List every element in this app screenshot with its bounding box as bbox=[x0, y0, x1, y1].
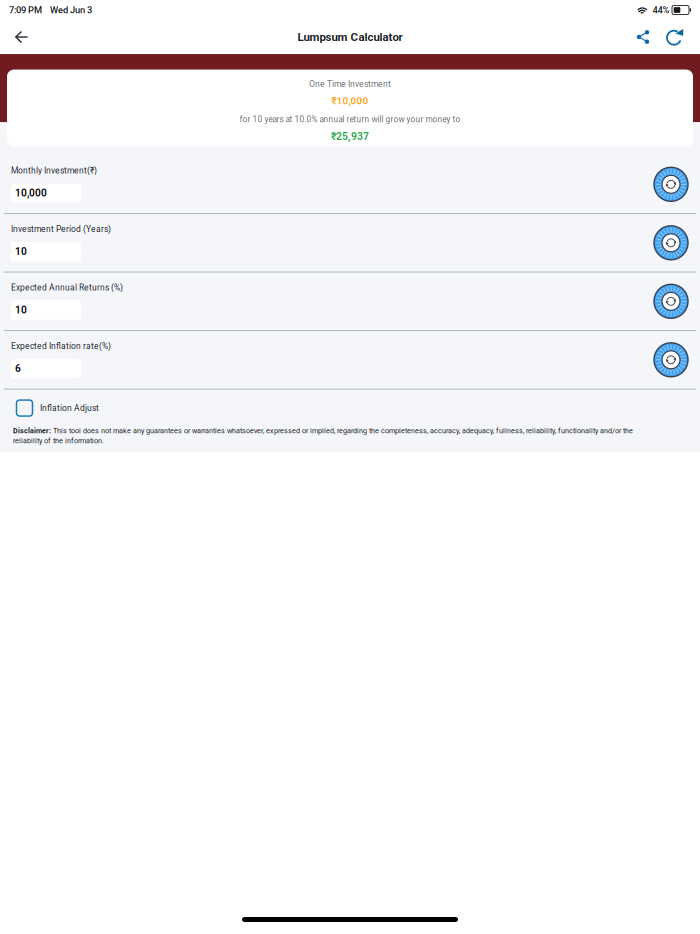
staticText: 10,000 bbox=[15, 187, 47, 199]
button[interactable]: Share bbox=[628, 22, 658, 51]
staticText: One Time Investment bbox=[309, 79, 391, 89]
staticText: Monthly Investment(₹) bbox=[11, 166, 97, 176]
button[interactable]: Back bbox=[7, 23, 36, 50]
staticText: Lumpsum Calculator bbox=[297, 30, 402, 44]
staticText: 44% bbox=[652, 4, 669, 15]
staticText: Expected Annual Returns (%) bbox=[11, 283, 123, 293]
staticText: Wed Jun 3 bbox=[50, 4, 92, 15]
staticText: Disclaimer: bbox=[13, 427, 51, 435]
button[interactable]: Adjust value bbox=[651, 164, 691, 204]
button[interactable]: Adjust value bbox=[651, 340, 691, 380]
staticText: Expected Inflation rate(%) bbox=[11, 341, 111, 351]
staticText: ₹25,937 bbox=[331, 130, 369, 142]
staticText: 10 bbox=[15, 246, 27, 257]
staticText: This tool does not make any guarantees o… bbox=[51, 427, 633, 435]
staticText: Investment Period (Years) bbox=[11, 224, 111, 234]
button[interactable]: Adjust value bbox=[651, 281, 691, 321]
staticText: 6 bbox=[15, 363, 21, 374]
staticText: 7:09 PM bbox=[9, 4, 42, 15]
button[interactable]: Refresh bbox=[658, 21, 692, 52]
staticText: Inflation Adjust bbox=[40, 403, 99, 413]
button[interactable]: Adjust value bbox=[651, 223, 691, 263]
staticText: reliability of the information. bbox=[13, 436, 104, 445]
staticText: 10 bbox=[15, 304, 27, 316]
staticText: ₹10,000 bbox=[331, 95, 368, 107]
button[interactable]: Inflation Adjust bbox=[0, 390, 700, 422]
staticText: for 10 years at 10.0% annual return will… bbox=[239, 115, 460, 124]
